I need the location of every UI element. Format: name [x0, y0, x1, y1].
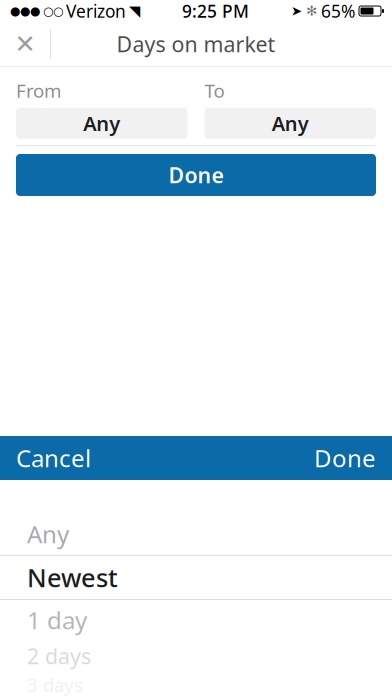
staticText: Any	[272, 110, 309, 137]
button[interactable]: Done	[16, 154, 376, 196]
staticText: ✻	[306, 3, 317, 18]
button[interactable]: Newest	[0, 556, 392, 599]
staticText: 65%	[321, 0, 355, 22]
button[interactable]: Cancel	[0, 436, 107, 480]
staticText: Done	[168, 161, 223, 189]
staticText: ●●●	[10, 4, 40, 18]
staticText: 3 days	[27, 672, 83, 696]
button[interactable]: Any	[204, 108, 376, 139]
button[interactable]: Any	[16, 108, 187, 139]
button[interactable]: 2 days	[0, 640, 392, 672]
staticText: 1 day	[27, 604, 87, 636]
button[interactable]: Any	[0, 513, 392, 555]
button[interactable]: Done	[298, 436, 392, 480]
staticText: ✕	[14, 30, 35, 58]
staticText: 9:25 PM	[182, 0, 249, 22]
staticText: ➤	[291, 3, 302, 18]
staticText: From	[16, 78, 61, 103]
staticText: Any	[83, 110, 120, 137]
staticText: 2 days	[27, 642, 91, 670]
staticText: Any	[27, 518, 69, 550]
staticText: ○○	[43, 4, 63, 18]
staticText: To	[204, 78, 224, 103]
staticText: Days on market	[116, 30, 275, 58]
button[interactable]: 1 day	[0, 600, 392, 640]
button[interactable]: Close	[0, 22, 50, 66]
staticText: ◥	[129, 3, 140, 19]
staticText: Newest	[27, 561, 118, 594]
staticText: Cancel	[16, 442, 91, 474]
staticText: Verizon	[66, 0, 126, 22]
staticText: Done	[314, 442, 376, 474]
